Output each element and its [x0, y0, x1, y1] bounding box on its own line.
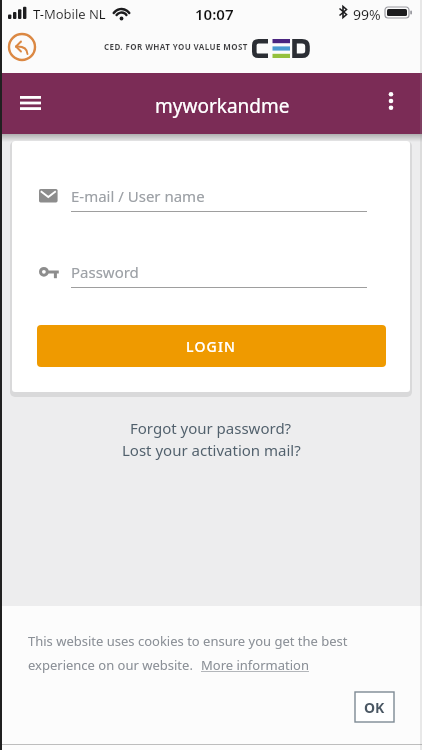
staticText: 10:07	[195, 4, 234, 24]
button[interactable]	[7, 32, 37, 62]
staticText: 99%	[353, 5, 381, 24]
button[interactable]	[12, 85, 50, 123]
staticText: T-Mobile NL	[33, 5, 106, 23]
button[interactable]: More information	[201, 656, 309, 674]
button[interactable]: OK	[355, 692, 394, 722]
staticText: Password	[71, 262, 139, 282]
button[interactable]: LOGIN	[37, 325, 386, 367]
staticText: E-mail / User name	[71, 186, 205, 206]
button[interactable]	[39, 248, 369, 294]
button[interactable]	[39, 172, 369, 218]
staticText: LOGIN	[186, 337, 237, 356]
staticText: CED. FOR WHAT YOU VALUE MOST	[104, 41, 248, 52]
staticText: This website uses cookies to ensure you …	[28, 632, 348, 650]
button[interactable]: Forgot your password?	[130, 418, 292, 438]
staticText: myworkandme	[155, 93, 290, 119]
button[interactable]: Lost your activation mail?	[122, 440, 301, 460]
staticText: experience on our website.	[28, 656, 193, 674]
staticText: OK	[364, 698, 385, 717]
button[interactable]	[372, 82, 410, 120]
